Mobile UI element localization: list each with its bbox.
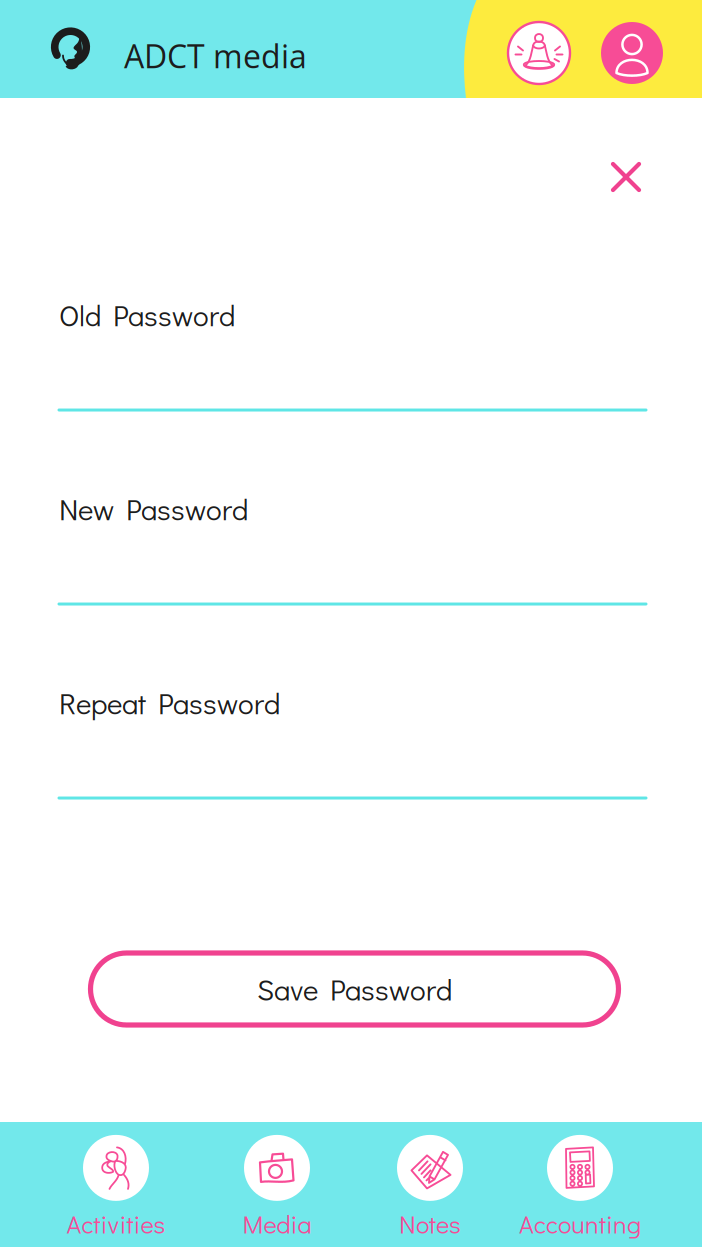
button[interactable]: Save Password bbox=[90, 953, 618, 1025]
staticText: Activities bbox=[66, 1207, 165, 1240]
button[interactable]: Activities bbox=[36, 1122, 196, 1247]
staticText: New Password bbox=[59, 489, 248, 528]
button[interactable]: Accounting bbox=[500, 1122, 660, 1247]
button[interactable]: Close bbox=[597, 148, 655, 206]
button[interactable]: Notes bbox=[350, 1122, 510, 1247]
staticText: Media bbox=[242, 1207, 311, 1240]
staticText: ADCT media bbox=[124, 34, 307, 78]
staticText: Accounting bbox=[519, 1207, 641, 1240]
button[interactable]: Notifications bbox=[508, 22, 570, 84]
button[interactable]: Media bbox=[197, 1122, 357, 1247]
button[interactable]: Profile bbox=[601, 22, 663, 84]
staticText: Repeat Password bbox=[59, 683, 280, 722]
staticText: Old Password bbox=[59, 295, 235, 334]
staticText: Save Password bbox=[257, 970, 452, 1008]
staticText: Notes bbox=[399, 1207, 461, 1240]
